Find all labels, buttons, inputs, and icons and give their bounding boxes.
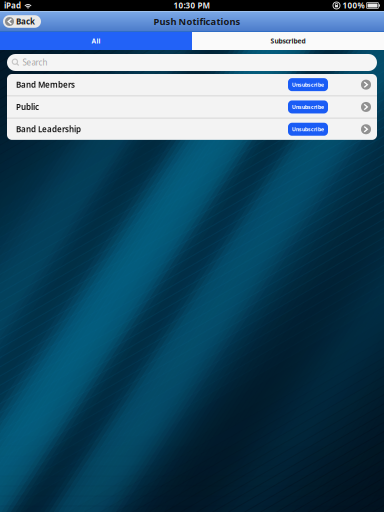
button[interactable]: Back	[3, 15, 41, 28]
staticText: Band Leadership	[16, 124, 81, 134]
staticText: 10:30 PM	[173, 0, 210, 11]
staticText: Unsubscribe	[292, 103, 324, 110]
button[interactable]: Band Leadership	[7, 119, 377, 140]
staticText: 100%	[342, 0, 364, 11]
button[interactable]: Unsubscribe	[288, 100, 328, 113]
button[interactable]: All	[0, 32, 192, 50]
staticText: Push Notifications	[153, 15, 240, 28]
button[interactable]: Public	[7, 96, 377, 118]
button[interactable]: Unsubscribe	[288, 123, 328, 136]
staticText: iPad	[4, 0, 21, 11]
button[interactable]: Unsubscribe	[288, 78, 328, 91]
button[interactable]: Band Members	[7, 74, 377, 95]
staticText: Subscribed	[270, 37, 305, 45]
staticText: Public	[16, 102, 39, 112]
staticText: Search	[22, 57, 47, 68]
staticText: Unsubscribe	[292, 81, 324, 88]
button[interactable]: Subscribed	[192, 32, 384, 50]
staticText: Back	[16, 16, 35, 27]
staticText: Band Members	[16, 79, 75, 90]
staticText: All	[91, 37, 100, 45]
staticText: Unsubscribe	[292, 126, 324, 133]
